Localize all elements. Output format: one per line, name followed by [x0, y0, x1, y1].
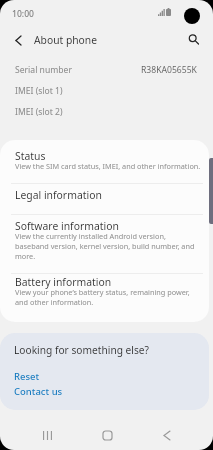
button[interactable]: Status: [0, 149, 209, 173]
staticText: Legal information: [15, 188, 102, 202]
button[interactable]: Software information: [0, 219, 209, 263]
staticText: View the SIM card status, IMEI, and othe…: [15, 161, 201, 171]
button[interactable]: Legal information: [0, 188, 209, 202]
staticText: View your phone’s battery status, remain…: [15, 287, 190, 307]
staticText: R38KA05655K: [141, 64, 197, 76]
button[interactable]: Recent apps: [33, 421, 61, 449]
button[interactable]: Search: [181, 28, 205, 52]
staticText: Status: [15, 149, 46, 163]
staticText: About phone: [34, 33, 97, 47]
button[interactable]: Navigate up: [7, 29, 30, 52]
staticText: Software information: [15, 219, 119, 233]
staticText: Battery information: [15, 275, 112, 289]
button[interactable]: Reset: [14, 370, 40, 383]
staticText: Serial number: [15, 64, 72, 76]
staticText: Reset: [14, 370, 40, 383]
staticText: Contact us: [14, 385, 63, 398]
staticText: Looking for something else?: [14, 343, 150, 357]
button[interactable]: Battery information: [0, 275, 209, 309]
staticText: View the currently installed Android ver…: [15, 231, 195, 261]
staticText: IMEI (slot 1): [15, 85, 63, 97]
button[interactable]: Home: [93, 421, 121, 449]
staticText: IMEI (slot 2): [15, 106, 63, 118]
button[interactable]: Contact us: [14, 385, 63, 398]
button[interactable]: Back: [153, 421, 181, 449]
staticText: 10:00: [12, 8, 35, 20]
